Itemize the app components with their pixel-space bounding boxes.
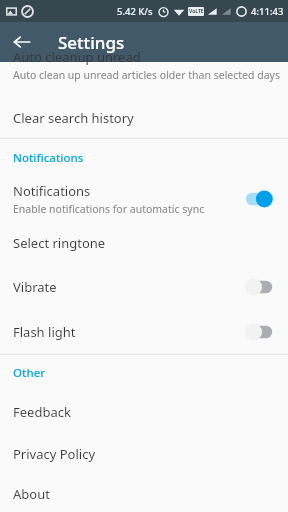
- staticText: Auto clean up unread articles older than…: [13, 68, 280, 82]
- staticText: Feedback: [13, 403, 71, 421]
- button[interactable]: About: [0, 475, 288, 512]
- staticText: Flash light: [13, 323, 244, 341]
- button[interactable]: Vibrate: [0, 265, 288, 309]
- button[interactable]: Feedback: [0, 391, 288, 433]
- staticText: Other: [13, 365, 46, 381]
- button[interactable]: Off: [244, 323, 274, 341]
- button[interactable]: Privacy Policy: [0, 433, 288, 475]
- staticText: Select ringtone: [13, 234, 106, 252]
- staticText: 4:11:43: [251, 5, 284, 18]
- staticText: Notifications: [13, 150, 84, 166]
- staticText: Auto cleanup unread: [13, 48, 141, 66]
- button[interactable]: Clear search history: [0, 98, 288, 138]
- staticText: Privacy Policy: [13, 445, 96, 463]
- button[interactable]: Select ringtone: [0, 221, 288, 265]
- staticText: About: [13, 485, 50, 503]
- staticText: Notifications: [13, 182, 91, 200]
- staticText: VoLTE: [189, 8, 204, 15]
- button[interactable]: On: [244, 190, 274, 208]
- staticText: Enable notifications for automatic sync: [13, 202, 205, 216]
- staticText: Clear search history: [13, 109, 134, 127]
- button[interactable]: Notifications: [0, 177, 288, 221]
- staticText: Settings: [58, 31, 125, 54]
- staticText: Vibrate: [13, 278, 244, 296]
- button[interactable]: Back: [6, 26, 38, 58]
- button[interactable]: Off: [244, 278, 274, 296]
- button[interactable]: Flash light: [0, 309, 288, 354]
- staticText: 5.42 K/s: [117, 5, 153, 18]
